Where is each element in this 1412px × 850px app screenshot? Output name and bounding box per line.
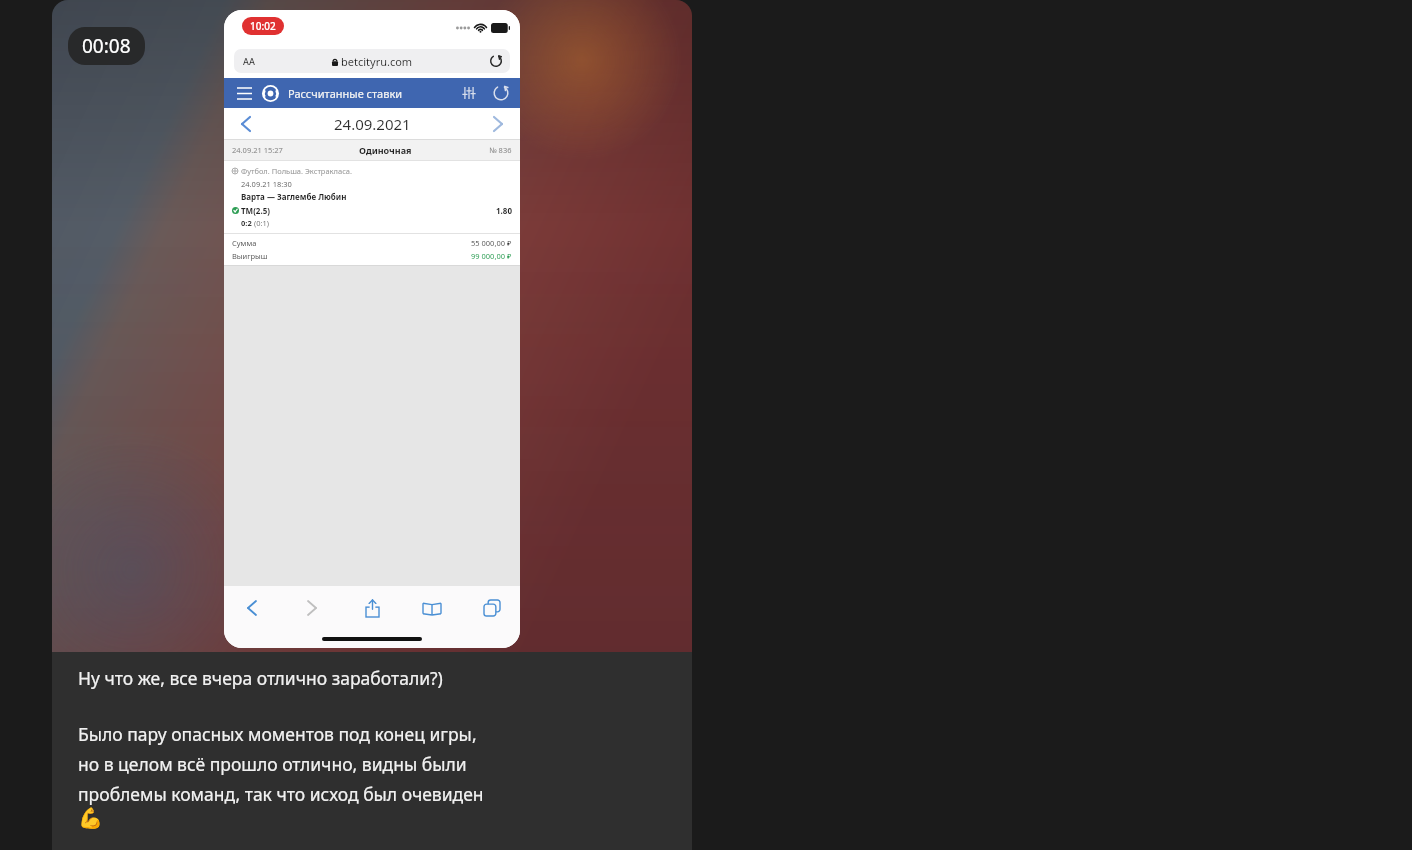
button[interactable]: Reload [489, 54, 503, 68]
staticText: AA [243, 55, 255, 67]
button[interactable]: Tabs [478, 594, 506, 622]
button[interactable]: Forward [298, 594, 326, 622]
button[interactable]: Refresh [492, 84, 510, 102]
staticText: 24.09.2021 [334, 114, 411, 134]
staticText: 1.80 [496, 205, 512, 216]
staticText: 00:08 [82, 33, 131, 59]
staticText: Сумма [232, 238, 257, 248]
staticText: 24.09.21 15:27 [232, 145, 283, 155]
staticText: 55 000,00 ₽ [471, 238, 512, 248]
staticText: № 836 [489, 145, 512, 155]
staticText: 💪 [78, 806, 103, 829]
staticText: ТМ(2.5) [241, 205, 270, 216]
button[interactable]: Filter [460, 84, 478, 102]
staticText: (0:1) [254, 218, 270, 228]
button[interactable]: Previous day [236, 114, 256, 134]
staticText: 0:2 [241, 218, 254, 228]
staticText: Ну что же, все вчера отлично заработали?… [78, 666, 443, 690]
button[interactable]: Betcity logo [262, 85, 279, 102]
staticText: Варта — Заглембе Любин [241, 191, 347, 202]
button[interactable]: 24.09.21 15:27 [224, 140, 520, 266]
staticText: Футбол. Польша. Экстракласа. [241, 166, 353, 176]
button[interactable]: Bookmarks [418, 594, 446, 622]
staticText: 24.09.21 18:30 [241, 179, 292, 189]
button[interactable]: Menu [234, 83, 254, 103]
button[interactable]: Share [358, 594, 386, 622]
staticText: betcityru.com [341, 54, 413, 69]
button[interactable]: Next day [488, 114, 508, 134]
button[interactable]: 00:08 [68, 27, 145, 65]
staticText: 10:02 [250, 19, 276, 33]
staticText: 99 000,00 ₽ [471, 251, 512, 261]
staticText: Рассчитанные ставки [288, 86, 403, 101]
button[interactable]: AA [234, 49, 510, 73]
staticText: Одиночная [359, 144, 412, 156]
staticText: Выигрыш [232, 251, 268, 261]
staticText: Было пару опасных моментов под конец игр… [78, 722, 484, 806]
button[interactable]: Back [238, 594, 266, 622]
